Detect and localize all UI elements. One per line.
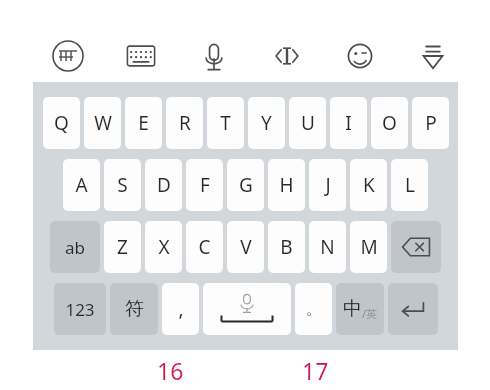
button[interactable]: Y (248, 97, 285, 149)
button[interactable]: C (186, 221, 223, 273)
button[interactable]: Backspace (391, 221, 441, 273)
staticText: I (345, 110, 352, 136)
button[interactable]: R (166, 97, 203, 149)
button[interactable]: A (63, 159, 100, 211)
button[interactable]: Voice input (191, 33, 237, 79)
staticText: L (405, 172, 415, 198)
button[interactable]: Enter (388, 283, 438, 335)
button[interactable]: S (104, 159, 141, 211)
button[interactable]: H (268, 159, 305, 211)
button[interactable]: B (268, 221, 305, 273)
button[interactable]: Space (203, 283, 291, 335)
button[interactable]: W (84, 97, 121, 149)
button[interactable]: 。 (295, 283, 332, 335)
staticText: W (94, 110, 112, 136)
button[interactable]: Q (43, 97, 80, 149)
button[interactable]: T (207, 97, 244, 149)
button[interactable]: N (309, 221, 346, 273)
button[interactable]: Emoji (337, 33, 383, 79)
button[interactable]: L (391, 159, 428, 211)
staticText: E (138, 110, 149, 136)
staticText: 16 (157, 355, 184, 386)
staticText: S (117, 172, 128, 198)
staticText: F (200, 172, 210, 198)
staticText: R (179, 110, 191, 136)
button[interactable]: V (227, 221, 264, 273)
staticText: B (280, 234, 293, 260)
staticText: Q (54, 110, 69, 136)
button[interactable]: , (162, 283, 199, 335)
staticText: M (360, 234, 378, 260)
staticText: /英 (362, 306, 378, 321)
button[interactable]: 符 (110, 283, 158, 335)
staticText: G (239, 172, 253, 198)
staticText: P (425, 110, 437, 136)
button[interactable]: Chinese English toggle (336, 283, 384, 335)
staticText: K (363, 172, 375, 198)
button[interactable]: F (186, 159, 223, 211)
button[interactable]: 123 (54, 283, 106, 335)
staticText: J (325, 172, 331, 198)
button[interactable]: E (125, 97, 162, 149)
button[interactable]: Z (104, 221, 141, 273)
staticText: Z (117, 234, 128, 260)
staticText: H (279, 172, 294, 198)
button[interactable]: Keyboard layout (118, 33, 164, 79)
button[interactable]: K (350, 159, 387, 211)
staticText: C (198, 234, 211, 260)
staticText: O (382, 110, 397, 136)
button[interactable]: P (412, 97, 449, 149)
staticText: 中 (343, 297, 362, 321)
staticText: 123 (65, 298, 95, 321)
staticText: , (178, 296, 184, 322)
staticText: 。 (306, 300, 321, 319)
button[interactable]: Move cursor (264, 33, 310, 79)
button[interactable]: X (145, 221, 182, 273)
staticText: 符 (125, 297, 144, 321)
staticText: A (75, 172, 88, 198)
button[interactable]: M (350, 221, 387, 273)
staticText: D (157, 172, 171, 198)
button[interactable]: O (371, 97, 408, 149)
staticText: ab (65, 236, 85, 259)
staticText: 17 (302, 355, 329, 386)
staticText: X (158, 234, 170, 260)
button[interactable]: I (330, 97, 367, 149)
staticText: N (320, 234, 335, 260)
staticText: Y (261, 110, 272, 136)
button[interactable]: Input method (45, 33, 91, 79)
button[interactable]: J (309, 159, 346, 211)
button[interactable]: U (289, 97, 326, 149)
button[interactable]: Hide keyboard (410, 33, 456, 79)
button[interactable]: D (145, 159, 182, 211)
staticText: T (220, 110, 231, 136)
staticText: V (240, 234, 252, 260)
button[interactable]: ab (50, 221, 100, 273)
staticText: U (301, 110, 315, 136)
button[interactable]: G (227, 159, 264, 211)
